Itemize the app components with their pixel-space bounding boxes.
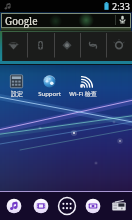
staticText: Support	[38, 90, 61, 98]
staticText: 2:33	[112, 0, 130, 12]
button[interactable]: Wi-Fi	[0, 31, 27, 65]
button[interactable]: Google search	[1, 13, 131, 31]
button[interactable]: Support	[33, 74, 66, 98]
button[interactable]: Wi-Fi 檢查	[66, 74, 99, 98]
button[interactable]: Brightness	[106, 31, 132, 65]
button[interactable]: FM radio	[106, 192, 132, 220]
staticText: Wi-Fi 檢查	[69, 90, 97, 98]
button[interactable]: Music	[0, 192, 27, 220]
button[interactable]: Sync	[80, 31, 106, 65]
button[interactable]: 設定	[0, 74, 33, 98]
button[interactable]: Videos	[27, 192, 54, 220]
button[interactable]: Bluetooth	[27, 31, 54, 65]
staticText: Google	[5, 14, 38, 28]
button[interactable]: Location	[54, 31, 80, 65]
staticText: 設定	[11, 90, 23, 98]
button[interactable]: All apps	[54, 192, 80, 220]
button[interactable]: Gallery	[80, 192, 106, 220]
